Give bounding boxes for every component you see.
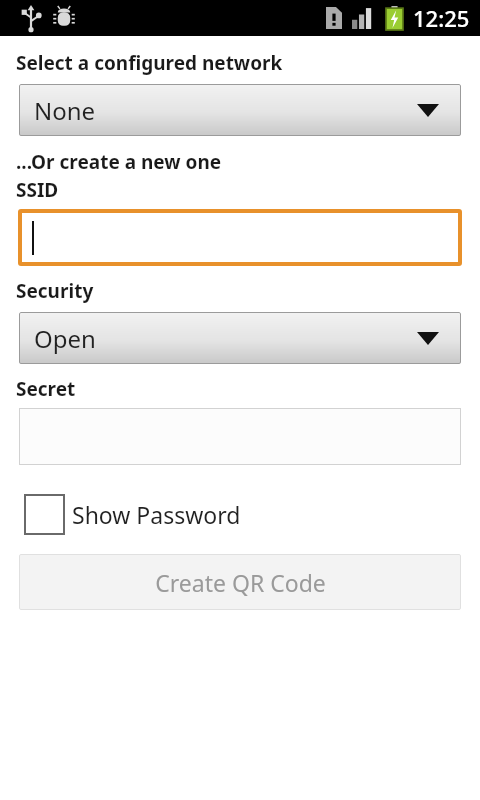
other: Signal strength — [352, 7, 376, 29]
staticText: SSID — [16, 177, 59, 203]
button[interactable] — [18, 209, 462, 266]
other: No SIM card — [326, 7, 342, 29]
button[interactable] — [19, 408, 461, 465]
staticText: Open — [34, 322, 96, 355]
button[interactable]: Create QR Code — [19, 554, 461, 610]
other: USB debugging — [52, 6, 76, 30]
other: Battery charging — [386, 6, 403, 30]
button[interactable]: Open — [19, 312, 461, 364]
other: USB connected — [18, 5, 44, 31]
staticText: Create QR Code — [155, 567, 326, 598]
staticText: Show Password — [72, 499, 241, 530]
staticText: 12:25 — [413, 3, 470, 33]
button[interactable]: None — [19, 84, 461, 136]
staticText: Security — [16, 278, 94, 304]
staticText: Secret — [16, 376, 76, 402]
staticText: None — [34, 94, 96, 127]
staticText: Select a configured network — [16, 50, 283, 76]
staticText: ...Or create a new one — [16, 149, 222, 175]
button[interactable]: Show Password — [24, 494, 241, 535]
